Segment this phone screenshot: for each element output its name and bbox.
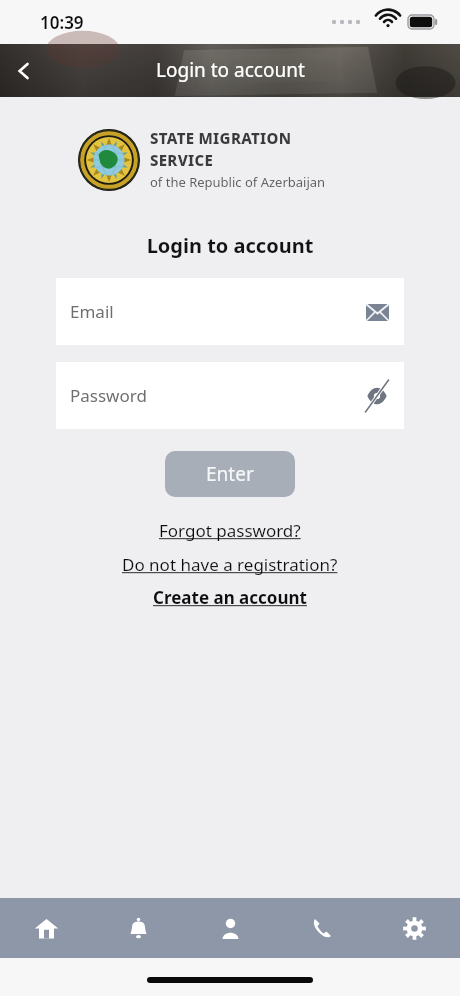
- staticText: SERVICE: [150, 150, 214, 170]
- button[interactable]: Forgot password?: [155, 518, 305, 543]
- button[interactable]: Do not have a registration?: [118, 552, 342, 577]
- staticText: Login to account: [156, 57, 305, 83]
- button[interactable]: Profile: [184, 898, 276, 958]
- staticText: Create an account: [153, 586, 307, 609]
- staticText: Password: [70, 384, 147, 407]
- button[interactable]: Settings: [368, 898, 460, 958]
- button[interactable]: Home: [0, 898, 92, 958]
- button[interactable]: Enter: [165, 451, 295, 497]
- staticText: 10:39: [40, 11, 84, 34]
- button[interactable]: Back: [0, 47, 48, 95]
- staticText: Do not have a registration?: [122, 553, 338, 576]
- staticText: Email: [70, 300, 114, 323]
- staticText: of the Republic of Azerbaijan: [150, 173, 326, 191]
- staticText: Login to account: [0, 232, 460, 259]
- button[interactable]: Email: [56, 278, 404, 345]
- button[interactable]: Password: [56, 362, 404, 429]
- staticText: Enter: [206, 461, 254, 487]
- button[interactable]: Notifications: [92, 898, 184, 958]
- button[interactable]: Call: [276, 898, 368, 958]
- staticText: STATE MIGRATION: [150, 128, 292, 148]
- staticText: Forgot password?: [159, 519, 301, 542]
- button[interactable]: Create an account: [149, 585, 311, 610]
